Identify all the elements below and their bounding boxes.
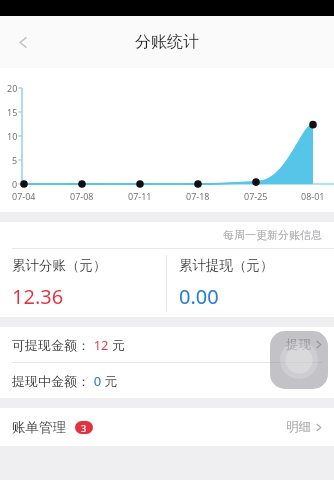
staticText: 12.36 bbox=[12, 283, 64, 310]
staticText: 明细 bbox=[286, 419, 311, 435]
button[interactable]: Assistive touch bbox=[270, 331, 328, 389]
staticText: 每周一更新分账信息 bbox=[223, 228, 322, 242]
button[interactable]: 可提现金额： 12 元 bbox=[0, 327, 334, 362]
staticText: 分账统计 bbox=[135, 32, 199, 52]
staticText: 07-25 bbox=[244, 190, 268, 202]
staticText: 账单管理 bbox=[12, 419, 66, 436]
staticText: 08-01 bbox=[301, 190, 325, 202]
staticText: 07-04 bbox=[12, 190, 36, 202]
button[interactable]: 累计分账（元） bbox=[0, 249, 166, 317]
staticText: 10 bbox=[7, 130, 18, 142]
staticText: 0.00 bbox=[179, 283, 219, 310]
staticText: 提现中金额： 0 元 bbox=[12, 371, 118, 390]
staticText: 07-08 bbox=[70, 190, 94, 202]
button[interactable]: 累计提现（元） bbox=[167, 249, 334, 317]
staticText: 3 bbox=[81, 422, 87, 434]
staticText: 累计提现（元） bbox=[179, 257, 274, 274]
staticText: 可提现金额： 12 元 bbox=[12, 335, 125, 354]
staticText: 07-18 bbox=[186, 190, 210, 202]
staticText: 5 bbox=[12, 154, 18, 166]
staticText: 0 bbox=[12, 178, 18, 190]
staticText: 07-11 bbox=[128, 190, 152, 202]
button[interactable]: 账单管理 bbox=[0, 408, 334, 446]
staticText: 累计分账（元） bbox=[12, 257, 107, 274]
button[interactable]: 提现中金额： 0 元 bbox=[0, 363, 334, 398]
staticText: 20 bbox=[7, 82, 18, 94]
button[interactable]: Back bbox=[0, 19, 46, 65]
staticText: 提现 bbox=[286, 337, 311, 353]
staticText: 15 bbox=[7, 106, 18, 118]
